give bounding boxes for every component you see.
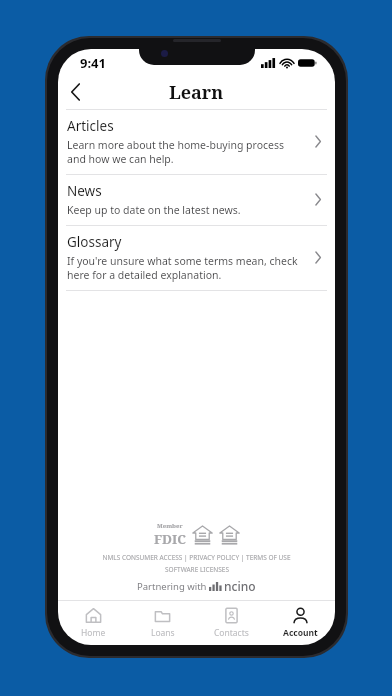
staticText: News bbox=[67, 182, 102, 200]
staticText: Articles bbox=[67, 117, 114, 135]
button[interactable]: Glossary bbox=[58, 226, 335, 290]
button[interactable]: Loans bbox=[128, 601, 197, 645]
staticText: If you're unsure what some terms mean, c… bbox=[67, 254, 301, 282]
button[interactable]: Account bbox=[266, 601, 335, 645]
staticText: Contacts bbox=[214, 627, 249, 639]
staticText: Loans bbox=[151, 627, 175, 639]
staticText: Keep up to date on the latest news. bbox=[67, 203, 241, 217]
staticText: SOFTWARE LICENSES bbox=[165, 565, 229, 574]
staticText: FDIC bbox=[154, 530, 186, 548]
button[interactable]: News bbox=[58, 175, 335, 225]
button[interactable]: Back bbox=[58, 75, 92, 109]
staticText: 9:41 bbox=[80, 54, 106, 72]
staticText: Glossary bbox=[67, 233, 122, 251]
button[interactable]: Articles bbox=[58, 110, 335, 174]
staticText: Partnering with bbox=[137, 580, 209, 593]
staticText: Member bbox=[157, 522, 183, 530]
button[interactable]: Contacts bbox=[197, 601, 266, 645]
staticText: ncino bbox=[224, 578, 256, 594]
staticText: Home bbox=[81, 627, 106, 639]
staticText: Account bbox=[283, 627, 318, 639]
staticText: NMLS CONSUMER ACCESS | PRIVACY POLICY | … bbox=[102, 553, 291, 562]
button[interactable]: Home bbox=[58, 601, 128, 645]
staticText: Learn bbox=[169, 80, 224, 105]
staticText: Learn more about the home-buying process… bbox=[67, 138, 301, 166]
